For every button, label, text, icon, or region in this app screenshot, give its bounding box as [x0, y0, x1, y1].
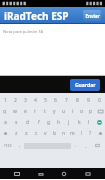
button[interactable]: x — [21, 128, 31, 139]
button[interactable]: 7 — [61, 95, 72, 106]
staticText: f — [38, 119, 40, 126]
button[interactable]: o — [77, 106, 86, 117]
button[interactable]: r — [30, 106, 40, 117]
staticText: 4 — [34, 97, 37, 104]
button[interactable]: Home — [57, 168, 71, 179]
button[interactable]: t — [40, 106, 50, 117]
staticText: u — [62, 108, 66, 115]
button[interactable]: y — [50, 106, 59, 117]
button[interactable]: h — [54, 117, 64, 128]
staticText: 5 — [44, 97, 47, 104]
staticText: z — [15, 130, 18, 137]
staticText: c — [35, 130, 38, 137]
button[interactable]: z — [11, 128, 21, 139]
button[interactable]: a — [0, 117, 11, 128]
button[interactable]: Keyboard — [10, 168, 24, 179]
staticText: 3 — [24, 97, 27, 104]
staticText: 6 — [54, 97, 57, 104]
button[interactable]: . — [71, 139, 81, 152]
staticText: i — [72, 108, 74, 115]
button[interactable]: 3 — [20, 95, 30, 106]
button[interactable]: u — [59, 106, 68, 117]
button[interactable]: 0 — [94, 95, 105, 106]
staticText: d — [26, 119, 30, 126]
staticText: j — [68, 119, 70, 126]
button[interactable]: _ — [81, 139, 90, 152]
button[interactable]: v — [41, 128, 50, 139]
button[interactable]: f — [33, 117, 44, 128]
staticText: v — [44, 130, 47, 137]
staticText: n — [62, 130, 66, 137]
button[interactable]: Enviar — [83, 10, 101, 21]
staticText: o — [80, 108, 84, 115]
button[interactable]: d — [22, 117, 33, 128]
button[interactable]: Back — [34, 168, 48, 179]
staticText: 9 — [87, 97, 90, 104]
button[interactable]: q — [0, 106, 10, 117]
staticText: Enviar — [85, 13, 100, 19]
staticText: ?123 — [4, 143, 12, 148]
button[interactable]: j — [64, 117, 74, 128]
staticText: e — [24, 108, 27, 115]
staticText: s — [15, 119, 18, 126]
button[interactable]: Shift — [0, 128, 11, 139]
staticText: h — [57, 119, 61, 126]
button[interactable]: 5 — [40, 95, 50, 106]
button[interactable]: p — [86, 106, 95, 117]
button[interactable]: Recents — [81, 168, 95, 179]
button[interactable]: Next — [90, 139, 105, 152]
button[interactable]: Shift — [95, 128, 105, 139]
staticText: 8 — [76, 97, 79, 104]
staticText: y — [53, 108, 56, 115]
staticText: Guardar — [75, 82, 96, 89]
staticText: 1 — [4, 97, 7, 104]
button[interactable]: 9 — [83, 95, 94, 106]
button[interactable]: Enter — [94, 117, 105, 128]
staticText: 0 — [98, 97, 101, 104]
button[interactable]: 2 — [10, 95, 20, 106]
staticText: x — [25, 130, 28, 137]
staticText: g — [47, 119, 51, 126]
staticText: ! — [81, 130, 83, 137]
staticText: r — [34, 108, 37, 115]
button[interactable]: g — [44, 117, 54, 128]
staticText: 7 — [65, 97, 68, 104]
button[interactable]: ?123 — [0, 139, 15, 152]
staticText: k — [78, 119, 81, 126]
button[interactable]: k — [74, 117, 84, 128]
staticText: Nota para pulmón FA — [3, 29, 43, 34]
button[interactable]: Backspace — [95, 106, 105, 117]
staticText: t — [44, 108, 46, 115]
button[interactable]: ! — [77, 128, 86, 139]
button[interactable]: n — [59, 128, 68, 139]
staticText: 2 — [14, 97, 17, 104]
button[interactable]: Guardar — [70, 79, 100, 91]
button[interactable]: c — [31, 128, 41, 139]
staticText: l — [88, 119, 90, 126]
button[interactable]: 6 — [50, 95, 61, 106]
button[interactable]: Nota para pulmón FA — [0, 24, 105, 75]
staticText: p — [89, 108, 93, 115]
button[interactable]: b — [50, 128, 59, 139]
staticText: m — [70, 130, 75, 137]
button[interactable]: e — [20, 106, 30, 117]
staticText: _ — [85, 143, 87, 148]
staticText: . — [75, 142, 77, 149]
button[interactable]: l — [84, 117, 94, 128]
staticText: , — [19, 142, 21, 149]
button[interactable]: 1 — [0, 95, 10, 106]
staticText: q — [3, 108, 7, 115]
button[interactable]: 4 — [30, 95, 40, 106]
staticText: ? — [89, 130, 92, 137]
staticText: w — [13, 108, 17, 115]
button[interactable]: ? — [86, 128, 95, 139]
button[interactable]: Emoji — [15, 139, 24, 152]
button[interactable]: i — [68, 106, 77, 117]
staticText: b — [53, 130, 57, 137]
button[interactable]: s — [11, 117, 22, 128]
button[interactable]: 8 — [72, 95, 83, 106]
button[interactable]: w — [10, 106, 20, 117]
button[interactable]: m — [68, 128, 77, 139]
staticText: iRadTech ESP — [4, 9, 69, 23]
